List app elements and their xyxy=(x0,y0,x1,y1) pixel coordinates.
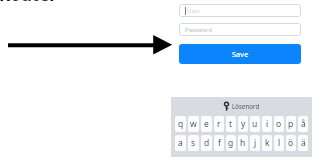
staticText: p xyxy=(288,118,294,130)
button[interactable]: p xyxy=(286,116,296,132)
button[interactable]: o xyxy=(274,116,284,132)
staticText: Router xyxy=(0,0,57,6)
button[interactable]: g xyxy=(226,135,236,151)
button[interactable]: j xyxy=(250,135,260,151)
button[interactable]: w xyxy=(188,116,199,132)
button[interactable]: Password xyxy=(179,23,301,36)
staticText: o xyxy=(276,118,282,130)
button[interactable]: Save xyxy=(179,44,301,64)
staticText: r xyxy=(217,118,221,130)
button[interactable]: f xyxy=(214,135,224,151)
button[interactable]: a xyxy=(175,135,186,151)
button[interactable]: d xyxy=(201,135,212,151)
staticText: ä xyxy=(301,137,306,149)
other: Arrow pointing right xyxy=(8,34,174,56)
staticText: i xyxy=(266,118,269,130)
staticText: y xyxy=(241,118,246,130)
other: Password key xyxy=(224,102,229,111)
staticText: g xyxy=(228,137,234,149)
staticText: f xyxy=(218,137,221,149)
staticText: s xyxy=(191,137,196,149)
button[interactable]: s xyxy=(188,135,199,151)
staticText: User xyxy=(187,7,201,15)
button[interactable]: å xyxy=(298,116,308,132)
staticText: a xyxy=(178,137,183,149)
staticText: Lösenord xyxy=(232,102,260,110)
staticText: u xyxy=(252,118,258,130)
button[interactable]: User xyxy=(179,4,301,17)
staticText: l xyxy=(278,137,281,149)
staticText: k xyxy=(265,137,270,149)
staticText: h xyxy=(240,137,246,149)
button[interactable]: ä xyxy=(298,135,308,151)
button[interactable]: u xyxy=(250,116,260,132)
button[interactable]: ö xyxy=(286,135,296,151)
button[interactable]: k xyxy=(262,135,272,151)
button[interactable]: e xyxy=(201,116,212,132)
staticText: Password xyxy=(185,26,213,34)
staticText: å xyxy=(301,118,306,130)
staticText: w xyxy=(190,118,197,130)
button[interactable]: Password key xyxy=(171,97,312,115)
staticText: j xyxy=(254,137,257,149)
button[interactable]: l xyxy=(274,135,284,151)
staticText: q xyxy=(178,118,184,130)
staticText: Save xyxy=(232,49,249,59)
button[interactable]: h xyxy=(238,135,248,151)
staticText: ö xyxy=(288,137,294,149)
button[interactable]: i xyxy=(262,116,272,132)
button[interactable]: t xyxy=(226,116,236,132)
button[interactable]: r xyxy=(214,116,224,132)
button[interactable]: q xyxy=(175,116,186,132)
button[interactable]: y xyxy=(238,116,248,132)
staticText: e xyxy=(204,118,209,130)
staticText: d xyxy=(204,137,210,149)
staticText: t xyxy=(229,118,233,130)
